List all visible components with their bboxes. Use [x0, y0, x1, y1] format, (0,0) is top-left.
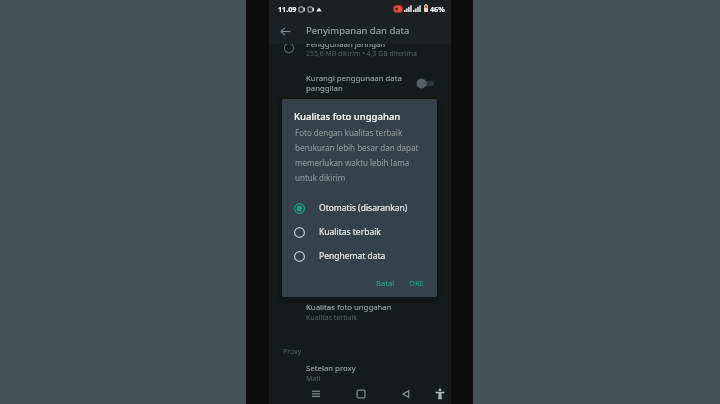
button[interactable]: Accessibility: [432, 386, 448, 402]
staticText: 46%: [430, 4, 445, 14]
staticText: Mati: [306, 374, 321, 384]
button[interactable]: Kurangi penggunaan data panggilan: [269, 70, 451, 96]
staticText: Kualitas foto unggahan: [306, 302, 392, 313]
button[interactable]: Back: [398, 386, 414, 402]
staticText: Proxy: [283, 347, 302, 357]
staticText: Kualitas foto unggahan: [294, 110, 401, 123]
staticText: Kurangi penggunaan data panggilan: [306, 73, 402, 93]
staticText: Foto dengan kualitas terbaik berukuran l…: [295, 127, 429, 183]
button[interactable]: Batal: [372, 274, 399, 292]
button[interactable]: Kualitas foto unggahan: [269, 300, 451, 332]
button[interactable]: Back: [276, 22, 294, 40]
staticText: Kualitas terbaik: [319, 226, 381, 238]
staticText: Penghemat data: [319, 250, 386, 262]
button[interactable]: Penghemat data: [282, 244, 437, 268]
button[interactable]: OKE: [405, 274, 428, 292]
staticText: Kualitas terbaik: [306, 313, 357, 323]
button[interactable]: Setelan proxy: [269, 363, 451, 391]
button[interactable]: Otomatis (disarankan): [282, 196, 437, 220]
staticText: 255,6 MB dikirim • 4,3 GB diterima: [306, 49, 417, 58]
staticText: OKE: [409, 278, 424, 288]
staticText: Penggunaan jaringan: [306, 39, 386, 50]
button[interactable]: Recents: [308, 386, 324, 402]
button[interactable]: Penggunaan jaringan: [269, 36, 451, 62]
staticText: 11.09: [278, 4, 297, 14]
staticText: Otomatis (disarankan): [319, 202, 408, 214]
staticText: Setelan proxy: [306, 363, 356, 374]
staticText: Batal: [376, 278, 395, 288]
staticText: Penyimpanan dan data: [306, 24, 410, 37]
button[interactable]: Home: [353, 386, 369, 402]
button[interactable]: Kualitas terbaik: [282, 220, 437, 244]
